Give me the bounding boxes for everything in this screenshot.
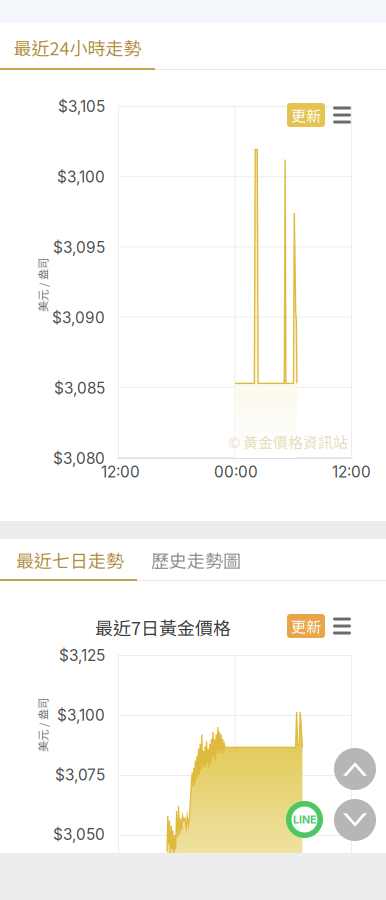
staticText: 更新 bbox=[291, 104, 321, 126]
staticText: $3,050 bbox=[53, 825, 105, 844]
staticText: $3,125 bbox=[59, 646, 105, 665]
button[interactable]: Chart options bbox=[330, 614, 354, 638]
staticText: 12:00 bbox=[332, 463, 371, 481]
staticText: $3,080 bbox=[53, 449, 105, 468]
staticText: 更新 bbox=[291, 615, 321, 637]
staticText: 歷史走勢圖 bbox=[151, 547, 241, 573]
staticText: 最近7日黃金價格 bbox=[95, 614, 231, 640]
staticText: $3,085 bbox=[54, 379, 105, 397]
staticText: 最近七日走勢 bbox=[16, 547, 124, 573]
staticText: $3,105 bbox=[58, 97, 105, 116]
staticText: $3,095 bbox=[53, 238, 105, 257]
staticText: $3,075 bbox=[55, 766, 105, 784]
staticText: $3,090 bbox=[52, 308, 105, 327]
button[interactable]: 更新 bbox=[287, 103, 325, 127]
button[interactable]: Share on LINE bbox=[286, 801, 323, 838]
staticText: LINE bbox=[293, 813, 316, 826]
button[interactable]: 最近七日走勢 bbox=[0, 541, 140, 579]
staticText: $3,100 bbox=[57, 706, 105, 724]
button[interactable]: 歷史走勢圖 bbox=[140, 541, 252, 579]
staticText: 美元 / 盎司 bbox=[15, 277, 69, 293]
staticText: 最近24小時走勢 bbox=[13, 34, 141, 61]
staticText: 美元 / 盎司 bbox=[15, 717, 69, 733]
button[interactable]: Chart options bbox=[330, 103, 354, 127]
staticText: 00:00 bbox=[214, 463, 258, 481]
button[interactable]: 更新 bbox=[287, 614, 325, 638]
staticText: 12:00 bbox=[101, 463, 140, 481]
button[interactable]: 最近24小時走勢 bbox=[0, 25, 155, 70]
button[interactable]: Scroll to top bbox=[334, 748, 376, 790]
staticText: © 黃金價格資訊站 bbox=[228, 431, 348, 453]
staticText: $3,100 bbox=[57, 168, 105, 186]
button[interactable]: Scroll to bottom bbox=[334, 799, 376, 841]
